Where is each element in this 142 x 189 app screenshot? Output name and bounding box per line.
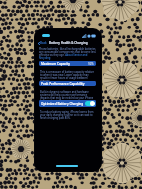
staticText: Peak Performance Capability <box>41 82 85 86</box>
staticText: Back <box>40 41 47 45</box>
staticText: Phone batteries, like all rechargeable b… <box>39 47 97 59</box>
button[interactable]: Peak Performance Capability <box>39 81 96 86</box>
staticText: Maximum Capacity <box>41 62 70 66</box>
staticText: Optimized Battery Charging <box>41 102 84 106</box>
button[interactable]: Optimized Battery Charging <box>85 101 95 106</box>
staticText: This is a measure of battery capacity re… <box>40 70 95 82</box>
button[interactable]: Maximum Capacity <box>39 61 96 66</box>
staticText: To reduce battery aging, iPhone learns f… <box>40 110 95 119</box>
button[interactable]: Back <box>38 41 47 45</box>
staticText: Battery Health & Charging <box>49 41 88 45</box>
staticText: 92% <box>88 62 94 66</box>
staticText: Built-in dynamic software and hardware s… <box>40 90 95 102</box>
button[interactable]: Optimized Battery Charging <box>39 100 96 107</box>
